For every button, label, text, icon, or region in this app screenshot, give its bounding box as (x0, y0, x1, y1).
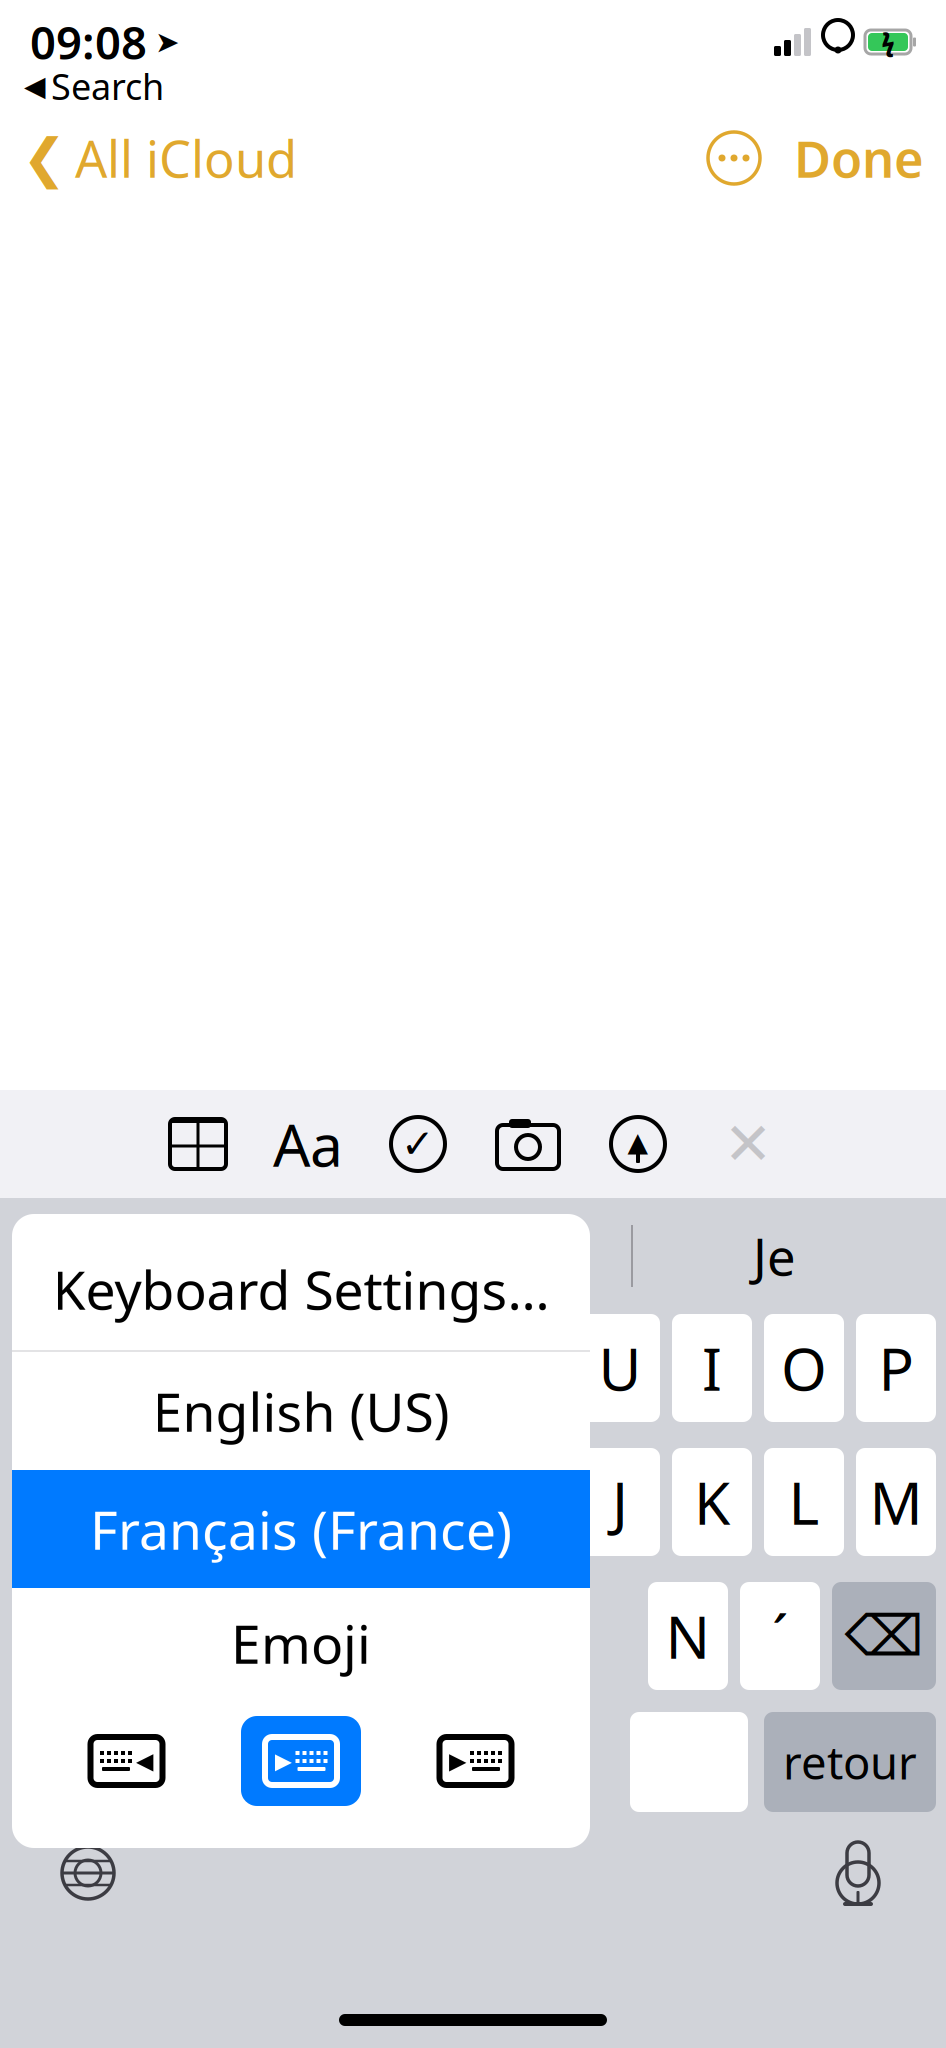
button[interactable]: Close toolbar (693, 1090, 803, 1198)
button[interactable]: M (856, 1448, 936, 1556)
staticText: ✓ (401, 1121, 435, 1167)
staticText: J (612, 1463, 628, 1541)
button[interactable]: K (672, 1448, 752, 1556)
button[interactable]: Done (772, 123, 946, 193)
button[interactable]: Right split keyboard (415, 1716, 535, 1806)
staticText: All iCloud (75, 124, 297, 192)
button[interactable]: English (US) (12, 1352, 590, 1470)
button[interactable]: P (856, 1314, 936, 1422)
staticText: ◀ (24, 70, 46, 102)
staticText: ϟ (881, 26, 894, 58)
staticText: retour (783, 1732, 917, 1792)
button[interactable]: Insert table (143, 1090, 253, 1198)
staticText: Done (794, 124, 924, 192)
staticText: Keyboard Settings… (52, 1254, 549, 1324)
staticText: I (702, 1329, 722, 1407)
button[interactable]: J (580, 1448, 660, 1556)
staticText: N (665, 1597, 710, 1675)
button[interactable]: Next keyboard (28, 1818, 148, 1928)
staticText: ➤ (155, 25, 180, 59)
staticText: 09:08 (30, 12, 147, 72)
staticText: P (878, 1329, 913, 1407)
button[interactable]: I (672, 1314, 752, 1422)
button[interactable]: ❮ (0, 123, 319, 193)
staticText: K (694, 1463, 730, 1541)
staticText: ❮ (22, 128, 67, 188)
staticText: Je (753, 1222, 796, 1290)
button[interactable]: Markup (583, 1090, 693, 1198)
button[interactable]: N (648, 1582, 728, 1690)
button[interactable]: Français (France) (12, 1470, 590, 1588)
staticText: U (598, 1329, 641, 1407)
staticText: O (781, 1329, 827, 1407)
button[interactable]: More options (696, 123, 772, 193)
button[interactable]: Delete (832, 1582, 936, 1690)
staticText: ⌫ (844, 1604, 923, 1668)
staticText: ´ (772, 1597, 788, 1675)
button[interactable]: U (580, 1314, 660, 1422)
staticText: English (US) (152, 1376, 449, 1446)
button[interactable]: Checklist (363, 1090, 473, 1198)
button[interactable]: Full keyboard (241, 1716, 361, 1806)
button[interactable]: retour (764, 1712, 936, 1812)
button[interactable]: ´ (740, 1582, 820, 1690)
button[interactable]: L (764, 1448, 844, 1556)
staticText: ▶ (274, 1748, 291, 1774)
button[interactable]: ◀ (0, 66, 188, 106)
staticText: ▲ (627, 1127, 648, 1157)
button[interactable]: Left split keyboard (66, 1716, 186, 1806)
button[interactable]: O (764, 1314, 844, 1422)
button[interactable]: Emoji (12, 1588, 590, 1698)
staticText: Aa (273, 1105, 343, 1183)
staticText: Français (France) (90, 1494, 512, 1564)
button[interactable]: Text format (253, 1090, 363, 1198)
button[interactable]: Dictation (798, 1818, 918, 1928)
staticText: ✕ (723, 1111, 772, 1177)
button[interactable]: Camera (473, 1090, 583, 1198)
staticText: ◀ (136, 1748, 153, 1774)
staticText: ▶ (449, 1748, 466, 1774)
staticText: Search (51, 62, 164, 110)
staticText: Emoji (231, 1608, 371, 1678)
staticText: M (869, 1463, 922, 1541)
button[interactable]: Keyboard Settings… (12, 1228, 590, 1350)
staticText: L (788, 1463, 819, 1541)
